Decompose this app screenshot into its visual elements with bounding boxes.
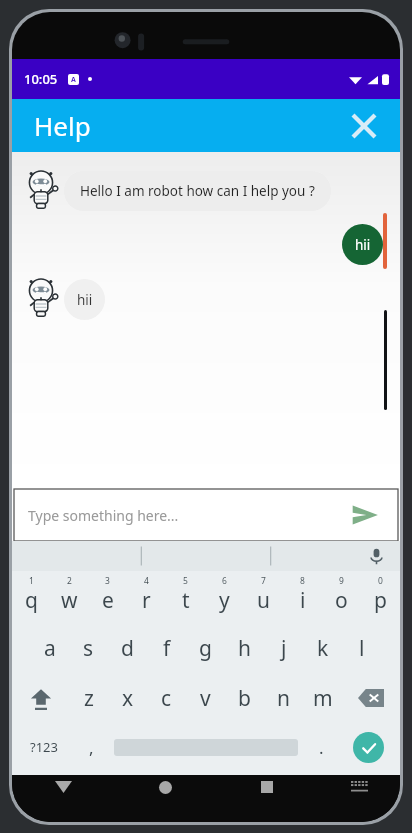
staticText: g: [199, 634, 212, 663]
button[interactable]: 6: [205, 571, 244, 623]
button[interactable]: b: [225, 673, 264, 723]
staticText: p: [374, 586, 387, 615]
button[interactable]: Back: [12, 781, 114, 822]
button[interactable]: n: [264, 673, 303, 723]
button[interactable]: 3: [88, 571, 127, 623]
button[interactable]: Shift: [12, 673, 69, 723]
button[interactable]: g: [186, 623, 225, 673]
button[interactable]: hii: [64, 279, 105, 320]
button[interactable]: v: [186, 673, 225, 723]
staticText: A: [71, 75, 76, 85]
staticText: x: [122, 684, 134, 713]
button[interactable]: hii: [342, 224, 383, 265]
staticText: 4: [144, 575, 149, 587]
button[interactable]: .: [305, 723, 337, 771]
button[interactable]: 0: [361, 571, 400, 623]
button[interactable]: c: [147, 673, 186, 723]
staticText: f: [163, 634, 171, 663]
staticText: u: [257, 586, 270, 615]
staticText: v: [200, 684, 211, 713]
button[interactable]: Send: [346, 496, 384, 534]
staticText: w: [61, 586, 78, 615]
staticText: 2: [67, 575, 72, 587]
staticText: h: [238, 634, 251, 663]
button[interactable]: h: [225, 623, 264, 673]
staticText: e: [102, 586, 114, 615]
button[interactable]: 9: [322, 571, 361, 623]
staticText: m: [313, 684, 333, 713]
button[interactable]: Hide keyboard: [318, 781, 400, 822]
staticText: 1: [29, 575, 34, 587]
button[interactable]: Enter: [337, 723, 400, 771]
staticText: l: [359, 634, 365, 663]
staticText: a: [44, 634, 56, 663]
staticText: k: [317, 634, 329, 663]
staticText: 6: [222, 575, 227, 587]
staticText: .: [319, 736, 324, 759]
staticText: 5: [183, 575, 188, 587]
staticText: b: [238, 684, 251, 713]
button[interactable]: k: [303, 623, 342, 673]
button[interactable]: x: [108, 673, 147, 723]
staticText: ,: [89, 736, 94, 759]
button[interactable]: l: [342, 623, 381, 673]
button[interactable]: Backspace: [342, 673, 400, 723]
staticText: Type something here...: [28, 506, 179, 525]
staticText: ?123: [30, 738, 58, 756]
staticText: 3: [105, 575, 110, 587]
button[interactable]: ,: [75, 723, 107, 771]
staticText: q: [25, 586, 38, 615]
staticText: r: [142, 586, 151, 615]
button[interactable]: 1: [12, 571, 50, 623]
button[interactable]: Space: [107, 723, 305, 771]
button[interactable]: 5: [166, 571, 205, 623]
staticText: i: [300, 586, 306, 615]
staticText: z: [84, 684, 94, 713]
button[interactable]: m: [303, 673, 342, 723]
button[interactable]: 7: [244, 571, 283, 623]
staticText: o: [335, 586, 348, 615]
staticText: 10:05: [24, 70, 58, 88]
button[interactable]: Close: [344, 106, 384, 146]
button[interactable]: Home: [114, 781, 216, 822]
staticText: n: [277, 684, 290, 713]
button[interactable]: 4: [127, 571, 166, 623]
staticText: Help: [34, 108, 91, 143]
staticText: hii: [355, 236, 371, 254]
button[interactable]: Hello I am robot how can I help you ?: [64, 171, 331, 211]
staticText: Hello I am robot how can I help you ?: [80, 182, 315, 200]
button[interactable]: 8: [283, 571, 322, 623]
staticText: j: [281, 634, 287, 663]
button[interactable]: d: [108, 623, 147, 673]
button[interactable]: z: [69, 673, 108, 723]
button[interactable]: Voice input: [364, 544, 388, 568]
staticText: s: [83, 634, 94, 663]
button[interactable]: f: [147, 623, 186, 673]
staticText: 0: [378, 575, 383, 587]
button[interactable]: j: [264, 623, 303, 673]
button[interactable]: ?123: [12, 723, 75, 771]
staticText: c: [161, 684, 172, 713]
staticText: 9: [339, 575, 344, 587]
button[interactable]: 2: [50, 571, 88, 623]
staticText: 8: [300, 575, 305, 587]
button[interactable]: Recents: [216, 781, 318, 822]
staticText: 7: [261, 575, 266, 587]
staticText: t: [182, 586, 190, 615]
staticText: d: [121, 634, 134, 663]
staticText: y: [219, 586, 230, 615]
button[interactable]: a: [30, 623, 69, 673]
staticText: hii: [77, 291, 93, 309]
button[interactable]: s: [69, 623, 108, 673]
